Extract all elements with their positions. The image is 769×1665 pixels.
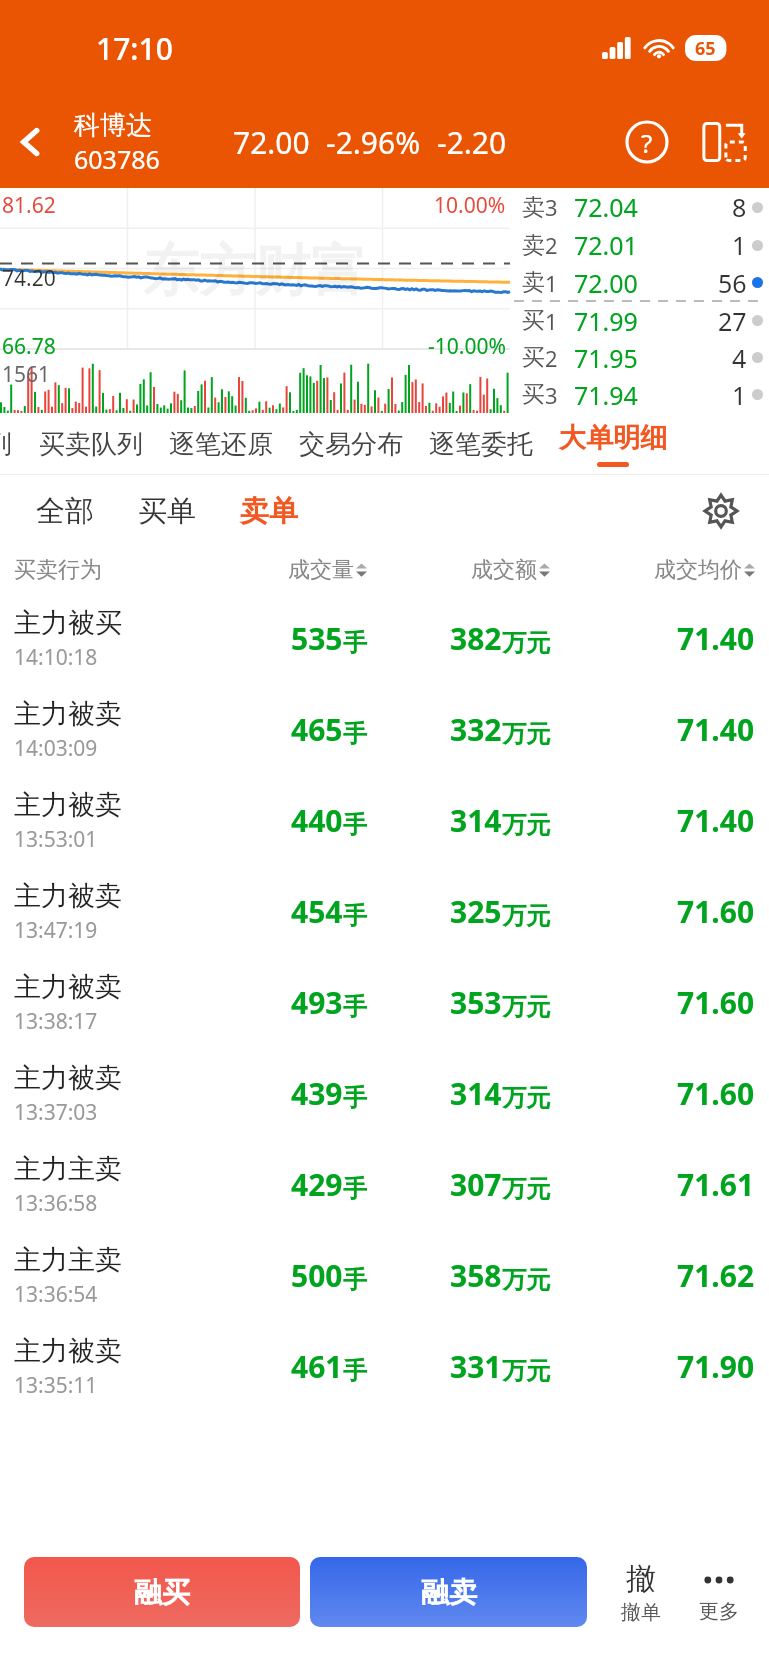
button[interactable]: Rotate screen xyxy=(695,112,755,172)
staticText: 逐笔还原 xyxy=(169,428,273,461)
button[interactable]: 主力被卖 xyxy=(0,684,769,775)
button[interactable]: 卖 xyxy=(514,264,769,301)
staticText: 81.62 xyxy=(2,191,56,220)
staticText: 454 xyxy=(291,891,343,932)
staticText: 71.62 xyxy=(677,1255,755,1296)
staticText: 314 xyxy=(450,1073,502,1114)
staticText: 71.95 xyxy=(574,341,638,375)
button[interactable]: 列 xyxy=(0,413,26,475)
staticText: 万元 xyxy=(502,1265,550,1295)
button[interactable]: 买卖队列 xyxy=(26,413,156,475)
staticText: 71.60 xyxy=(677,982,755,1023)
staticText: 卖单 xyxy=(240,493,298,530)
staticText: 1561 xyxy=(2,360,51,389)
staticText: 万元 xyxy=(502,1356,550,1386)
button[interactable]: 主力被卖 xyxy=(0,957,769,1048)
button[interactable]: 逐笔还原 xyxy=(156,413,286,475)
staticText: 万元 xyxy=(502,719,550,749)
staticText: 主力被卖 xyxy=(14,788,122,822)
staticText: 382 xyxy=(450,618,502,659)
staticText: 461 xyxy=(291,1346,343,1387)
staticText: 13:36:54 xyxy=(14,1280,98,1309)
button[interactable]: Back xyxy=(0,111,62,173)
button[interactable]: 更多 xyxy=(683,1561,755,1624)
button[interactable]: 成交均价 xyxy=(550,556,755,584)
staticText: 大单明细 xyxy=(559,421,667,455)
button[interactable]: 主力被卖 xyxy=(0,775,769,866)
staticText: 3 xyxy=(545,380,558,410)
staticText: 列 xyxy=(0,428,12,461)
button[interactable]: 主力被买 xyxy=(0,593,769,684)
staticText: 14:10:18 xyxy=(14,643,98,672)
staticText: 手 xyxy=(343,992,367,1022)
staticText: 13:37:03 xyxy=(14,1098,98,1127)
staticText: 325 xyxy=(450,891,502,932)
staticText: 2 xyxy=(545,343,558,373)
staticText: 66.78 xyxy=(2,332,56,361)
button[interactable]: 主力被卖 xyxy=(0,1321,769,1412)
button[interactable]: 买 xyxy=(514,302,769,339)
staticText: 主力主卖 xyxy=(14,1152,122,1186)
button[interactable]: 撤 xyxy=(605,1560,677,1625)
button[interactable]: 主力被卖 xyxy=(0,1048,769,1139)
staticText: 主力主卖 xyxy=(14,1243,122,1277)
staticText: 13:53:01 xyxy=(14,825,98,854)
staticText: 74.20 xyxy=(2,264,56,293)
staticText: 逐笔委托 xyxy=(429,428,533,461)
staticText: 主力被卖 xyxy=(14,879,122,913)
staticText: 买 xyxy=(522,343,545,372)
staticText: 主力被卖 xyxy=(14,1334,122,1368)
staticText: 465 xyxy=(291,709,343,750)
staticText: 主力被买 xyxy=(14,606,122,640)
button[interactable]: 大单明细 xyxy=(546,413,680,475)
staticText: 万元 xyxy=(502,901,550,931)
staticText: ? xyxy=(641,125,653,160)
staticText: 353 xyxy=(450,982,502,1023)
button[interactable]: 主力主卖 xyxy=(0,1230,769,1321)
staticText: 万元 xyxy=(502,992,550,1022)
button[interactable]: 买单 xyxy=(116,475,218,547)
button[interactable]: Settings xyxy=(695,485,747,537)
staticText: 买 xyxy=(522,380,545,409)
staticText: 万元 xyxy=(502,1174,550,1204)
staticText: 主力被卖 xyxy=(14,697,122,731)
staticText: 56 xyxy=(718,266,747,300)
staticText: 融卖 xyxy=(421,1575,477,1610)
staticText: 439 xyxy=(291,1073,343,1114)
staticText: 307 xyxy=(450,1164,502,1205)
button[interactable]: 卖 xyxy=(514,226,769,264)
staticText: 卖 xyxy=(522,268,545,297)
staticText: 72.01 xyxy=(574,228,638,262)
staticText: 535 xyxy=(291,618,343,659)
staticText: 10.00% xyxy=(434,191,506,220)
button[interactable]: 买 xyxy=(514,376,769,413)
staticText: 17:10 xyxy=(96,28,173,69)
button[interactable]: 融买 xyxy=(24,1557,300,1627)
staticText: 成交额 xyxy=(471,556,537,584)
button[interactable]: 融卖 xyxy=(310,1557,587,1627)
staticText: 440 xyxy=(291,800,343,841)
staticText: 4 xyxy=(732,341,747,375)
staticText: 27 xyxy=(718,304,747,338)
button[interactable]: 买 xyxy=(514,339,769,376)
staticText: 手 xyxy=(343,1356,367,1386)
button[interactable]: 东方财富 xyxy=(0,188,510,413)
button[interactable]: 主力被卖 xyxy=(0,866,769,957)
staticText: 撤单 xyxy=(621,1600,661,1625)
staticText: 71.60 xyxy=(677,1073,755,1114)
button[interactable]: 卖 xyxy=(514,188,769,226)
button[interactable]: 全部 xyxy=(14,475,116,547)
staticText: 1 xyxy=(732,228,747,262)
staticText: 成交量 xyxy=(288,556,354,584)
staticText: -2.96% xyxy=(326,122,421,163)
button[interactable]: 成交额 xyxy=(367,556,550,584)
button[interactable]: 逐笔委托 xyxy=(416,413,546,475)
button[interactable]: 主力主卖 xyxy=(0,1139,769,1230)
staticText: 撤 xyxy=(626,1560,656,1598)
staticText: 358 xyxy=(450,1255,502,1296)
button[interactable]: Help xyxy=(617,112,677,172)
button[interactable]: 成交量 xyxy=(184,556,367,584)
staticText: 71.99 xyxy=(574,304,638,338)
button[interactable]: 卖单 xyxy=(218,475,320,547)
button[interactable]: 交易分布 xyxy=(286,413,416,475)
